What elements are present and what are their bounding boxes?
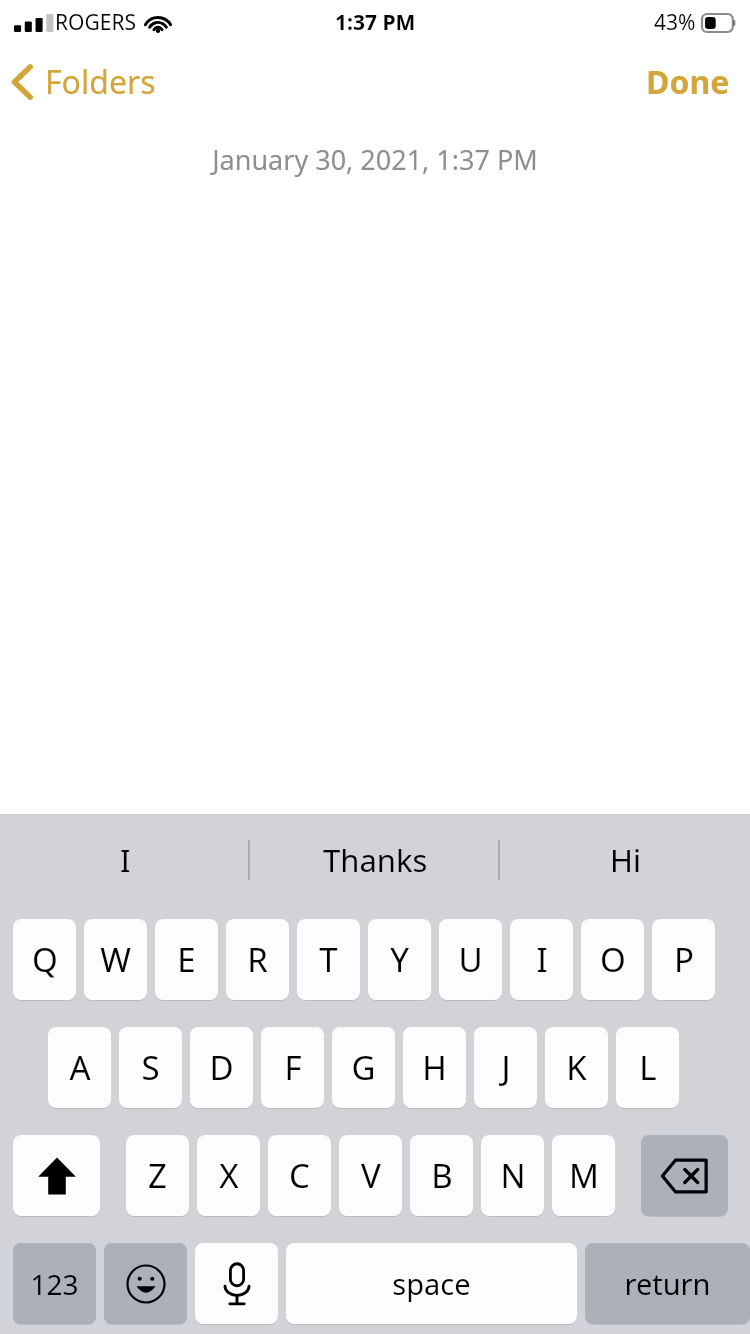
button[interactable]: I [510,918,573,1000]
button[interactable]: W [84,918,147,1000]
button[interactable]: H [403,1026,466,1108]
button[interactable]: M [552,1134,615,1216]
button[interactable]: Folders [10,60,156,104]
button[interactable]: Q [13,918,76,1000]
staticText: J [501,1045,511,1090]
button[interactable]: P [652,918,715,1000]
button[interactable]: O [581,918,644,1000]
button[interactable]: Backspace [641,1134,728,1216]
button[interactable]: F [261,1026,324,1108]
button[interactable]: G [332,1026,395,1108]
button[interactable]: T [297,918,360,1000]
staticText: X [219,1153,239,1198]
staticText: N [500,1153,526,1198]
staticText: R [247,937,268,982]
button[interactable]: V [339,1134,402,1216]
button[interactable]: J [474,1026,537,1108]
staticText: A [69,1045,91,1090]
button[interactable]: Emoji [104,1242,187,1324]
button[interactable]: L [616,1026,679,1108]
button[interactable]: E [155,918,218,1000]
button[interactable]: B [410,1134,473,1216]
button[interactable]: C [268,1134,331,1216]
button[interactable]: I [0,814,250,906]
staticText: P [674,937,694,982]
button[interactable]: Hi [500,814,750,906]
staticText: U [458,937,483,982]
staticText: T [319,937,338,982]
staticText: I [536,937,548,982]
staticText: O [600,937,626,982]
button[interactable]: N [481,1134,544,1216]
button[interactable]: X [197,1134,260,1216]
staticText: Hi [610,839,641,881]
staticText: Q [32,937,58,982]
staticText: S [141,1045,160,1090]
staticText: Done [646,60,730,104]
staticText: M [569,1153,599,1198]
staticText: ROGERS [55,8,137,37]
staticText: F [284,1045,302,1090]
staticText: Folders [45,60,156,104]
staticText: V [361,1153,381,1198]
button[interactable]: Shift [13,1134,100,1216]
staticText: I [120,839,131,881]
button[interactable]: Z [126,1134,189,1216]
staticText: return [624,1264,711,1303]
staticText: C [289,1153,310,1198]
button[interactable]: return [585,1242,750,1324]
staticText: Y [390,937,409,982]
button[interactable]: space [286,1242,577,1324]
button[interactable]: R [226,918,289,1000]
button[interactable]: Y [368,918,431,1000]
button[interactable]: D [190,1026,253,1108]
staticText: B [431,1153,453,1198]
staticText: D [209,1045,234,1090]
button[interactable]: K [545,1026,608,1108]
staticText: L [639,1045,657,1090]
staticText: E [177,937,196,982]
staticText: K [566,1045,587,1090]
staticText: space [392,1264,471,1303]
staticText: January 30, 2021, 1:37 PM [212,141,538,178]
button[interactable]: Thanks [250,814,500,906]
staticText: 1:37 PM [335,8,416,37]
staticText: Z [148,1153,167,1198]
staticText: 43% [654,8,696,37]
button[interactable]: A [48,1026,111,1108]
staticText: W [100,937,131,982]
button[interactable]: 123 [13,1242,96,1324]
button[interactable]: S [119,1026,182,1108]
button[interactable]: Dictate [195,1242,278,1324]
staticText: Thanks [323,839,428,881]
staticText: G [351,1045,376,1090]
staticText: H [422,1045,447,1090]
button[interactable]: Done [646,60,730,104]
staticText: 123 [30,1265,79,1303]
button[interactable]: U [439,918,502,1000]
